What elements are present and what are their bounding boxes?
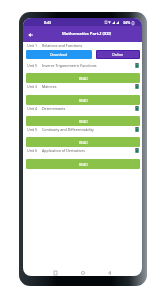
staticText: Download [50, 52, 68, 57]
button[interactable]: Delete [133, 62, 140, 69]
button[interactable]: Delete [133, 147, 140, 154]
staticText: READ [79, 119, 88, 124]
staticText: 8:43 [44, 20, 52, 25]
staticText: Online [112, 52, 124, 57]
staticText: Determinants [42, 106, 66, 111]
button[interactable]: Back [25, 29, 36, 40]
staticText: Application of Derivatives [42, 148, 85, 153]
button[interactable]: Delete [133, 126, 140, 133]
staticText: Unit 6 [27, 148, 38, 153]
staticText: Unit 4 [27, 106, 38, 111]
staticText: Unit 1 [27, 43, 38, 48]
staticText: Unit 5 [27, 63, 38, 68]
button[interactable]: Home [78, 268, 87, 276]
button[interactable]: READ [26, 137, 140, 147]
staticText: 34% [123, 20, 131, 25]
button[interactable]: Delete [133, 83, 140, 90]
staticText: Unit 3 [27, 84, 38, 89]
staticText: Inverse Trigonometric Functions [42, 63, 97, 68]
button[interactable]: Download [26, 50, 92, 59]
staticText: READ [79, 98, 88, 103]
button[interactable]: Recents [51, 268, 60, 276]
button[interactable]: READ [26, 116, 140, 126]
button[interactable]: READ [26, 159, 140, 169]
button[interactable]: Delete [133, 105, 140, 112]
staticText: READ [79, 162, 88, 167]
staticText: Mathematics Part-I (XII) [62, 31, 112, 37]
button[interactable]: READ [26, 73, 140, 83]
staticText: Matrices [42, 84, 57, 89]
button[interactable]: Online [96, 50, 140, 59]
staticText: READ [79, 76, 88, 81]
staticText: Unit 5 [27, 127, 38, 132]
button[interactable]: Back [105, 268, 114, 276]
staticText: READ [79, 140, 88, 145]
button[interactable]: READ [26, 95, 140, 105]
staticText: Continuity and Differentiability [42, 127, 94, 132]
staticText: Relations and Functions [42, 43, 83, 48]
